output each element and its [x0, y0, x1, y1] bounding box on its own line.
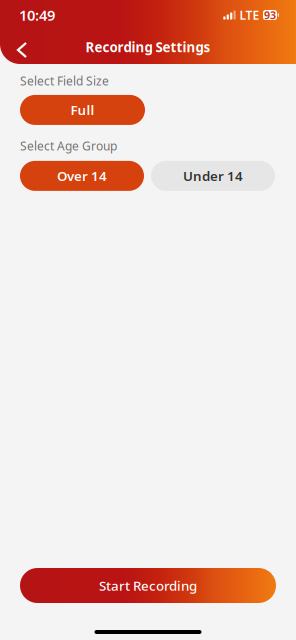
staticText: Full [70, 101, 94, 119]
button[interactable]: Under 14 [151, 161, 275, 191]
button[interactable]: Back [9, 32, 35, 62]
button[interactable]: Full [20, 95, 145, 125]
staticText: Select Age Group [20, 138, 117, 154]
button[interactable]: Over 14 [20, 161, 144, 191]
staticText: LTE [239, 7, 259, 23]
staticText: Over 14 [57, 167, 107, 185]
staticText: Start Recording [99, 577, 197, 594]
staticText: 93 [264, 8, 276, 22]
button[interactable]: Start Recording [20, 568, 276, 603]
staticText: Under 14 [183, 167, 243, 185]
staticText: Recording Settings [85, 38, 210, 56]
staticText: Select Field Size [20, 73, 109, 89]
staticText: 10:49 [19, 5, 55, 25]
